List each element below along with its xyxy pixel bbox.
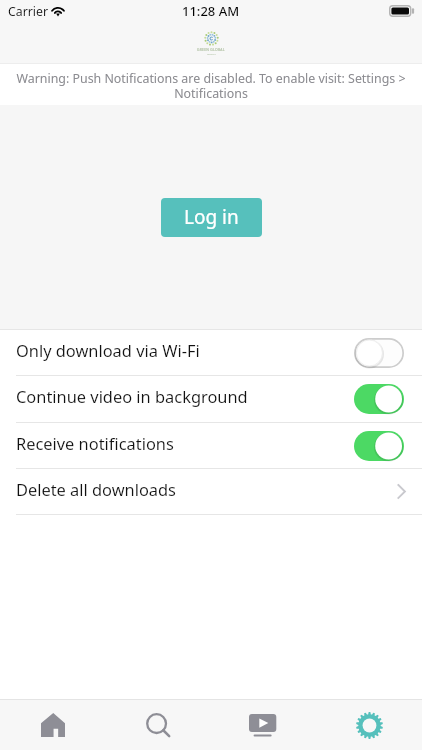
staticText: Carrier	[8, 3, 49, 20]
button[interactable]	[354, 338, 404, 368]
staticText: 11:28 AM	[182, 2, 240, 20]
button[interactable]: Settings	[316, 700, 422, 750]
button[interactable]: Log in	[161, 198, 262, 237]
button[interactable]: Only download via Wi-Fi	[0, 330, 422, 375]
staticText: Delete all downloads	[16, 478, 397, 500]
button[interactable]	[354, 384, 404, 414]
staticText: Continue video in background	[16, 385, 354, 407]
staticText: Only download via Wi-Fi	[16, 339, 354, 361]
staticText: Log in	[184, 204, 239, 230]
button[interactable]: Videos	[210, 700, 316, 750]
button[interactable]: Continue video in background	[0, 376, 422, 422]
staticText: Receive notifications	[16, 432, 354, 454]
staticText: MEDIA	[207, 52, 216, 55]
staticText: Warning: Push Notifications are disabled…	[14, 70, 408, 101]
button[interactable]	[354, 431, 404, 461]
button[interactable]: Home	[0, 700, 105, 750]
button[interactable]: Search	[105, 700, 210, 750]
button[interactable]: Delete all downloads	[0, 469, 422, 514]
button[interactable]: Receive notifications	[0, 423, 422, 468]
staticText: GREEN GLOBAL	[197, 47, 225, 52]
